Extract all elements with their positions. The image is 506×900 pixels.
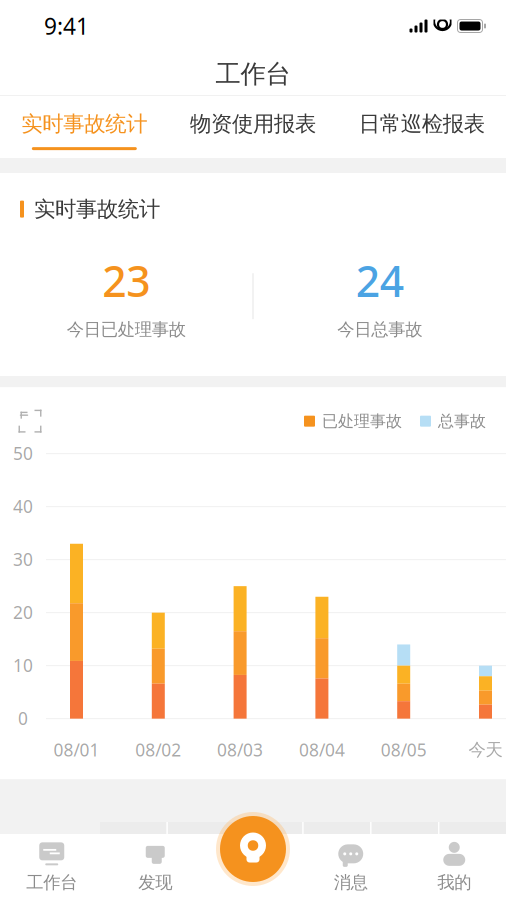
staticText: 30 bbox=[13, 548, 33, 571]
button[interactable]: 全屏 bbox=[0, 405, 48, 437]
staticText: 物资使用报表 bbox=[190, 111, 316, 137]
staticText: 我的 bbox=[437, 872, 471, 893]
button[interactable]: 实时事故统计 bbox=[0, 95, 169, 159]
staticText: 24 bbox=[356, 252, 404, 309]
staticText: 工作台 bbox=[26, 872, 77, 893]
staticText: 50 bbox=[13, 442, 33, 465]
staticText: 10 bbox=[13, 654, 33, 677]
button[interactable]: 工作台 bbox=[0, 834, 103, 900]
button[interactable]: 发现 bbox=[103, 834, 207, 900]
staticText: 08/03 bbox=[217, 738, 263, 761]
staticText: 实时事故统计 bbox=[34, 196, 160, 222]
staticText: 08/02 bbox=[135, 738, 181, 761]
button[interactable]: 日常巡检报表 bbox=[337, 95, 506, 159]
button[interactable]: 物资使用报表 bbox=[169, 95, 337, 159]
staticText: 工作台 bbox=[215, 58, 290, 89]
staticText: 消息 bbox=[334, 872, 368, 893]
staticText: 今日已处理事故 bbox=[67, 319, 186, 340]
staticText: 08/01 bbox=[53, 738, 99, 761]
staticText: 9:41 bbox=[44, 11, 89, 41]
button[interactable]: 消息 bbox=[299, 834, 402, 900]
staticText: 08/04 bbox=[299, 738, 345, 761]
staticText: 今日总事故 bbox=[337, 319, 422, 340]
staticText: 23 bbox=[102, 252, 150, 309]
staticText: 今天 bbox=[468, 739, 502, 760]
staticText: 已处理事故 bbox=[322, 411, 402, 431]
staticText: 0 bbox=[18, 707, 28, 730]
button[interactable]: 定位 bbox=[216, 812, 290, 886]
staticText: 发现 bbox=[138, 872, 172, 893]
staticText: 20 bbox=[13, 601, 33, 624]
staticText: 08/05 bbox=[381, 738, 427, 761]
staticText: 40 bbox=[13, 495, 33, 518]
staticText: 总事故 bbox=[438, 411, 486, 431]
staticText: 日常巡检报表 bbox=[359, 111, 485, 137]
button[interactable]: 我的 bbox=[402, 834, 506, 900]
staticText: 实时事故统计 bbox=[21, 111, 147, 137]
